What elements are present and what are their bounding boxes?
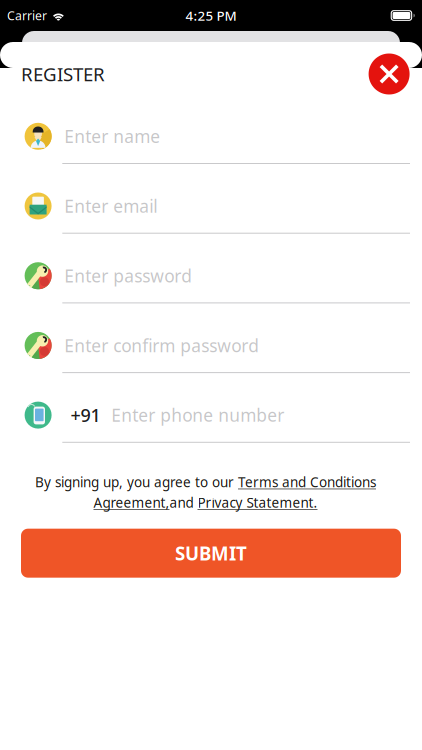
button[interactable]: Enter confirm password bbox=[25, 332, 410, 373]
button[interactable]: Close bbox=[369, 53, 410, 94]
staticText: Enter email bbox=[64, 194, 157, 218]
button[interactable]: +91 bbox=[25, 402, 410, 443]
staticText: Enter phone number bbox=[111, 403, 284, 427]
staticText: +91 bbox=[71, 403, 101, 427]
staticText: Agreement,and Privacy Statement. bbox=[93, 493, 317, 512]
staticText: Carrier bbox=[7, 7, 47, 24]
staticText: Enter password bbox=[64, 264, 192, 287]
staticText: 4:25 PM bbox=[185, 6, 236, 25]
button[interactable]: Enter email bbox=[25, 192, 410, 234]
staticText: SUBMIT bbox=[175, 540, 247, 566]
staticText: Enter name bbox=[64, 124, 160, 148]
staticText: REGISTER bbox=[21, 61, 105, 87]
staticText: Enter confirm password bbox=[64, 334, 259, 357]
button[interactable]: SUBMIT bbox=[21, 529, 401, 578]
button[interactable]: Enter password bbox=[25, 262, 410, 303]
button[interactable]: Enter name bbox=[25, 123, 410, 164]
staticText: By signing up, you agree to our Terms an… bbox=[35, 473, 376, 491]
